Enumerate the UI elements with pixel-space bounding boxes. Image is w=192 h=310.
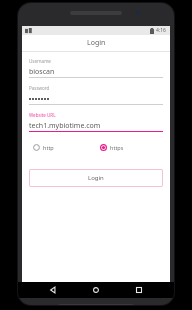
staticText: Website URL (29, 112, 56, 118)
staticText: tech1.mybiotime.com (29, 121, 101, 130)
button[interactable]: Back (45, 282, 61, 298)
staticText: Login (88, 174, 104, 182)
button[interactable]: Username (29, 58, 163, 78)
button[interactable]: Password (29, 85, 163, 105)
staticText: bioscan (29, 67, 55, 76)
staticText: Login (87, 38, 106, 48)
button[interactable]: Website URL (29, 112, 163, 132)
staticText: Password (29, 85, 50, 91)
staticText: http (43, 144, 54, 151)
button[interactable]: Login (29, 169, 163, 187)
button[interactable]: https (96, 142, 128, 153)
button[interactable]: Recent apps (131, 282, 147, 298)
button[interactable]: Home (88, 282, 104, 298)
staticText: https (110, 144, 124, 151)
staticText: 4:16 (156, 27, 166, 34)
button[interactable]: http (29, 142, 58, 153)
staticText: Username (29, 58, 51, 64)
